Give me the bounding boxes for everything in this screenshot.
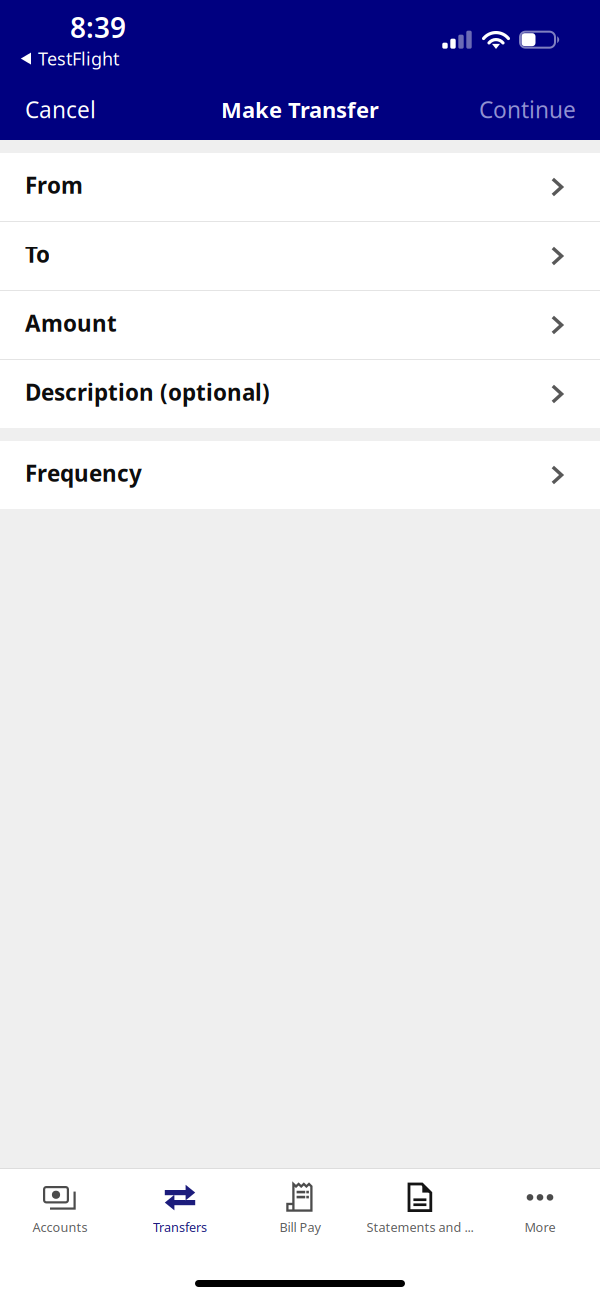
- button[interactable]: Transfers: [120, 1180, 240, 1238]
- button[interactable]: Statements and ...: [360, 1180, 480, 1238]
- button[interactable]: Bill Pay: [240, 1180, 360, 1238]
- button[interactable]: To: [0, 222, 600, 290]
- button[interactable]: Continue: [465, 82, 600, 137]
- button[interactable]: Amount: [0, 291, 600, 359]
- staticText: Continue: [479, 94, 576, 125]
- staticText: Frequency: [25, 458, 142, 488]
- button[interactable]: Accounts: [0, 1180, 120, 1238]
- staticText: Make Transfer: [221, 94, 379, 124]
- button[interactable]: More: [480, 1180, 600, 1238]
- staticText: TestFlight: [38, 46, 119, 71]
- staticText: To: [25, 239, 50, 269]
- staticText: 8:39: [70, 8, 126, 46]
- button[interactable]: Description (optional): [0, 360, 600, 428]
- staticText: Bill Pay: [279, 1218, 320, 1236]
- staticText: Statements and ...: [366, 1218, 473, 1236]
- staticText: Transfers: [153, 1218, 207, 1236]
- staticText: Cancel: [25, 94, 96, 125]
- staticText: More: [524, 1218, 555, 1236]
- button[interactable]: Cancel: [0, 82, 110, 137]
- staticText: Accounts: [32, 1218, 87, 1236]
- button[interactable]: Frequency: [0, 441, 600, 509]
- staticText: Description (optional): [25, 377, 270, 407]
- staticText: From: [25, 170, 83, 200]
- staticText: Amount: [25, 308, 117, 338]
- button[interactable]: From: [0, 153, 600, 221]
